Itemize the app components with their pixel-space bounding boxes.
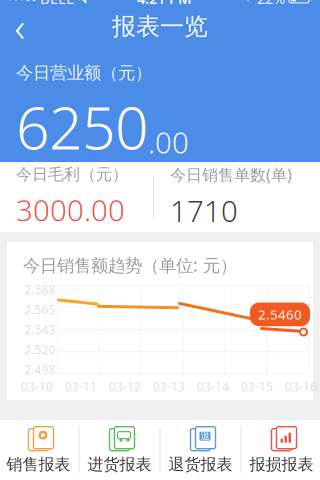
staticText: 2.565 xyxy=(24,302,55,317)
staticText: 03-10 xyxy=(21,378,53,394)
button[interactable]: 进货报表 xyxy=(79,421,159,479)
staticText: ‹ xyxy=(14,0,25,53)
staticText: ◥ xyxy=(77,0,86,5)
staticText: 2.5460 xyxy=(258,305,302,323)
staticText: 1710 xyxy=(170,191,238,230)
button[interactable]: 销售报表 xyxy=(0,421,78,479)
staticText: 2.543 xyxy=(24,322,55,337)
staticText: 2.520 xyxy=(24,342,55,357)
staticText: 03-15 xyxy=(241,378,273,394)
staticText: 退货报表 xyxy=(168,455,232,474)
staticText: 3000.00 xyxy=(16,190,125,229)
staticText: 今日销售额趋势（单位: 元） xyxy=(23,253,237,276)
staticText: 6250 xyxy=(16,88,148,166)
button[interactable]: 退 xyxy=(160,421,240,479)
staticText: 报表一览 xyxy=(112,12,208,41)
staticText: 22% xyxy=(257,0,285,8)
staticText: 进货报表 xyxy=(87,455,151,474)
button[interactable]: 报损报表 xyxy=(241,421,320,479)
staticText: 03-12 xyxy=(109,378,141,394)
staticText: 今日毛利（元） xyxy=(16,165,128,184)
staticText: 03-16 xyxy=(285,378,317,394)
staticText: 03-14 xyxy=(197,378,229,394)
staticText: 03-13 xyxy=(153,378,185,394)
staticText: 今日营业额（元） xyxy=(16,62,152,84)
staticText: 03-11 xyxy=(65,378,97,394)
staticText: 2.588 xyxy=(24,282,55,297)
staticText: BELL xyxy=(40,0,74,8)
staticText: 4:21 PM xyxy=(137,0,192,8)
button[interactable]: Back xyxy=(0,8,40,44)
staticText: 退 xyxy=(200,430,209,442)
staticText: ✦ xyxy=(243,0,253,5)
staticText: 报损报表 xyxy=(249,455,313,474)
staticText: .00 xyxy=(148,123,189,162)
staticText: 2.498 xyxy=(24,362,55,377)
staticText: 今日销售单数(单) xyxy=(170,164,292,185)
staticText: 销售报表 xyxy=(6,455,70,474)
